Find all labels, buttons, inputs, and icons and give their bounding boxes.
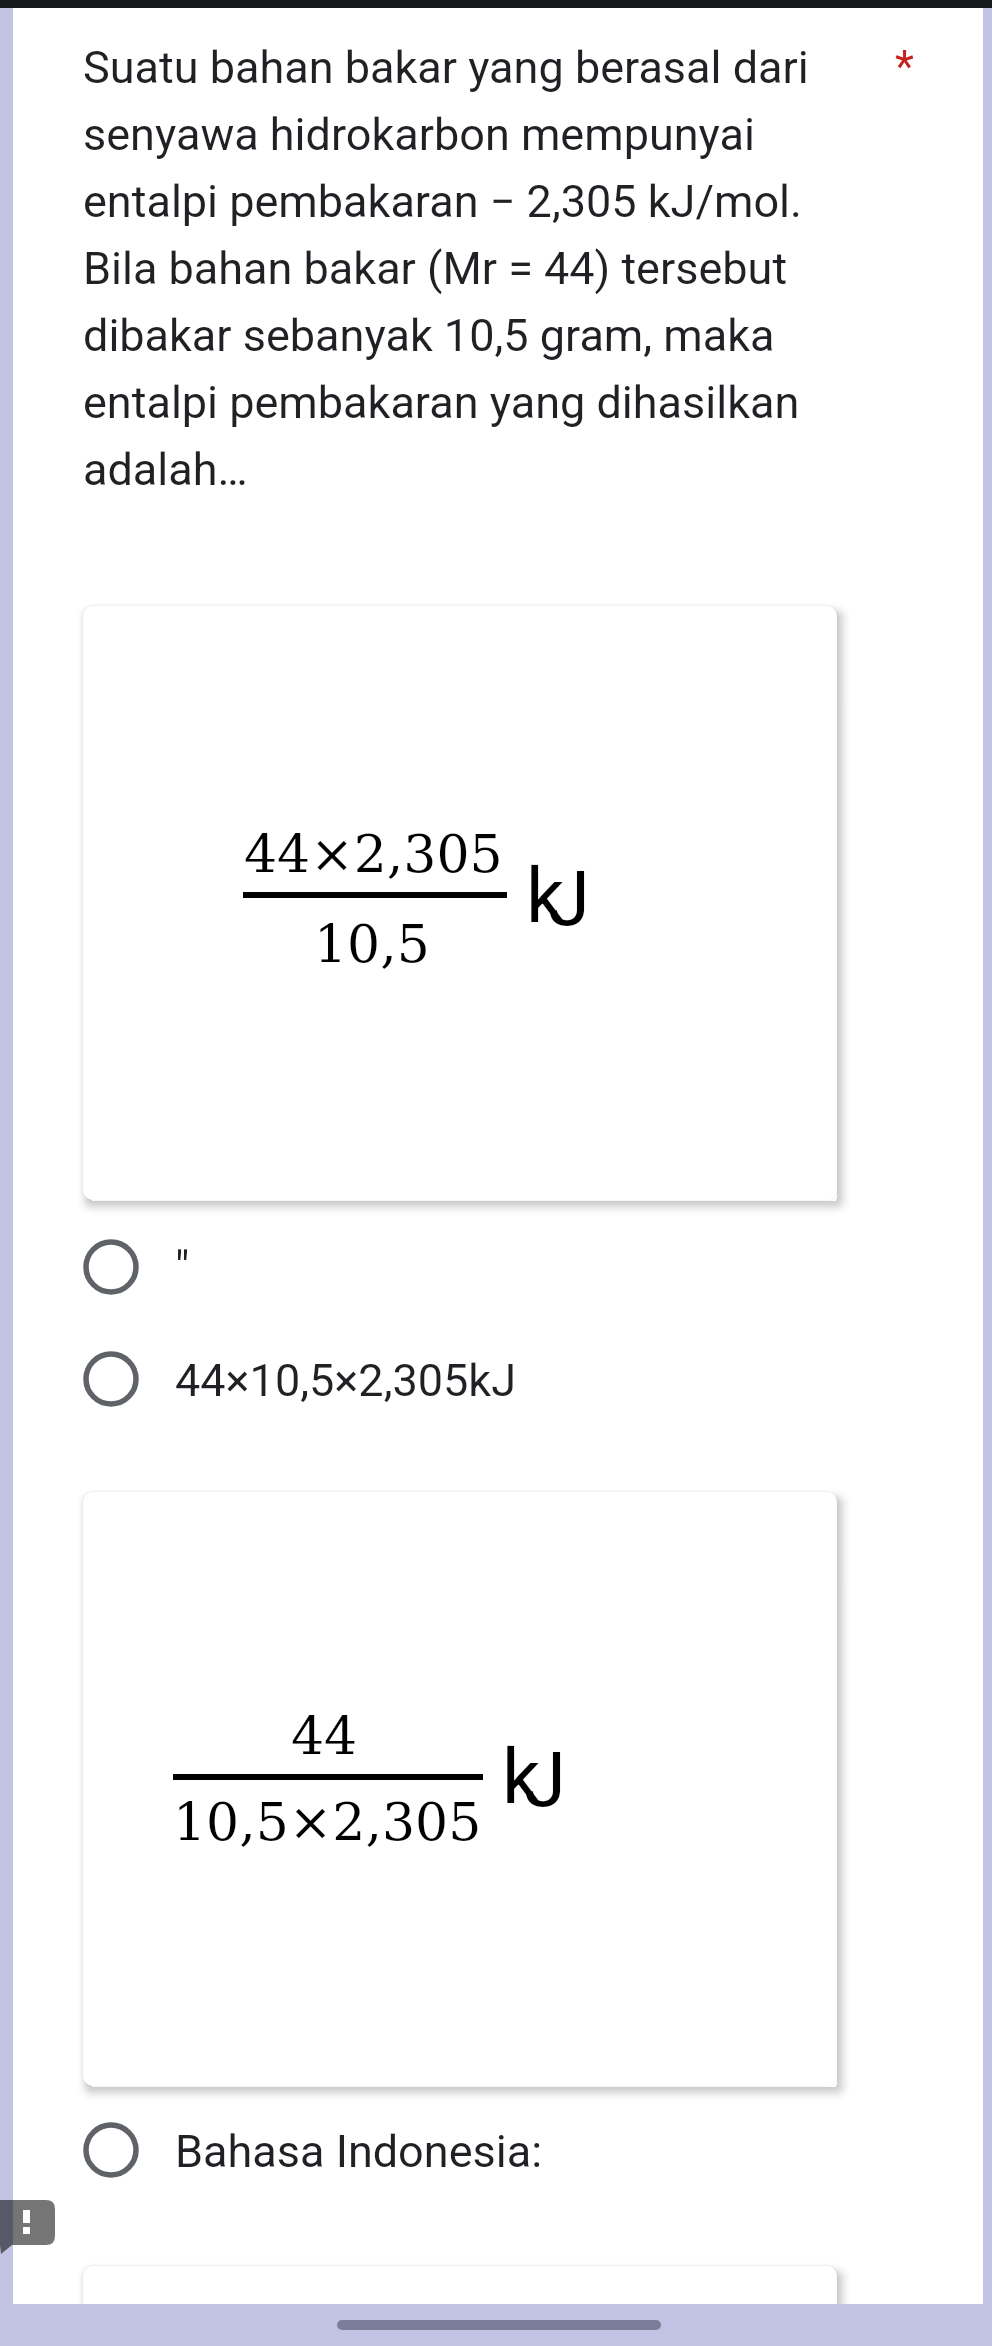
button[interactable]: Bahasa Indonesia:: [13, 2095, 983, 2205]
staticText: 10,5: [314, 914, 430, 975]
staticText: 44: [291, 1706, 358, 1767]
button[interactable]: 44×10,5×2,305kJ: [13, 1324, 983, 1434]
staticText: k: [526, 851, 565, 940]
button[interactable]: 44: [83, 1492, 837, 2086]
button[interactable]: ": [13, 1212, 983, 1322]
staticText: 44×10,5×2,305kJ: [175, 1354, 516, 1407]
staticText: 44×2,305: [244, 824, 503, 885]
staticText: *: [895, 41, 914, 93]
staticText: J: [548, 854, 590, 943]
staticText: k: [502, 1732, 541, 1821]
staticText: Suatu bahan bakar yang berasal dari seny…: [83, 41, 843, 496]
staticText: 10,5×2,305: [173, 1792, 482, 1853]
staticText: Bahasa Indonesia:: [175, 2125, 543, 2178]
staticText: ": [175, 1241, 190, 1294]
staticText: J: [524, 1735, 566, 1824]
button[interactable]: [83, 2266, 837, 2346]
button[interactable]: Home: [337, 2320, 661, 2330]
button[interactable]: Required question warning: [0, 2200, 55, 2260]
button[interactable]: 44×2,305: [83, 606, 837, 1200]
